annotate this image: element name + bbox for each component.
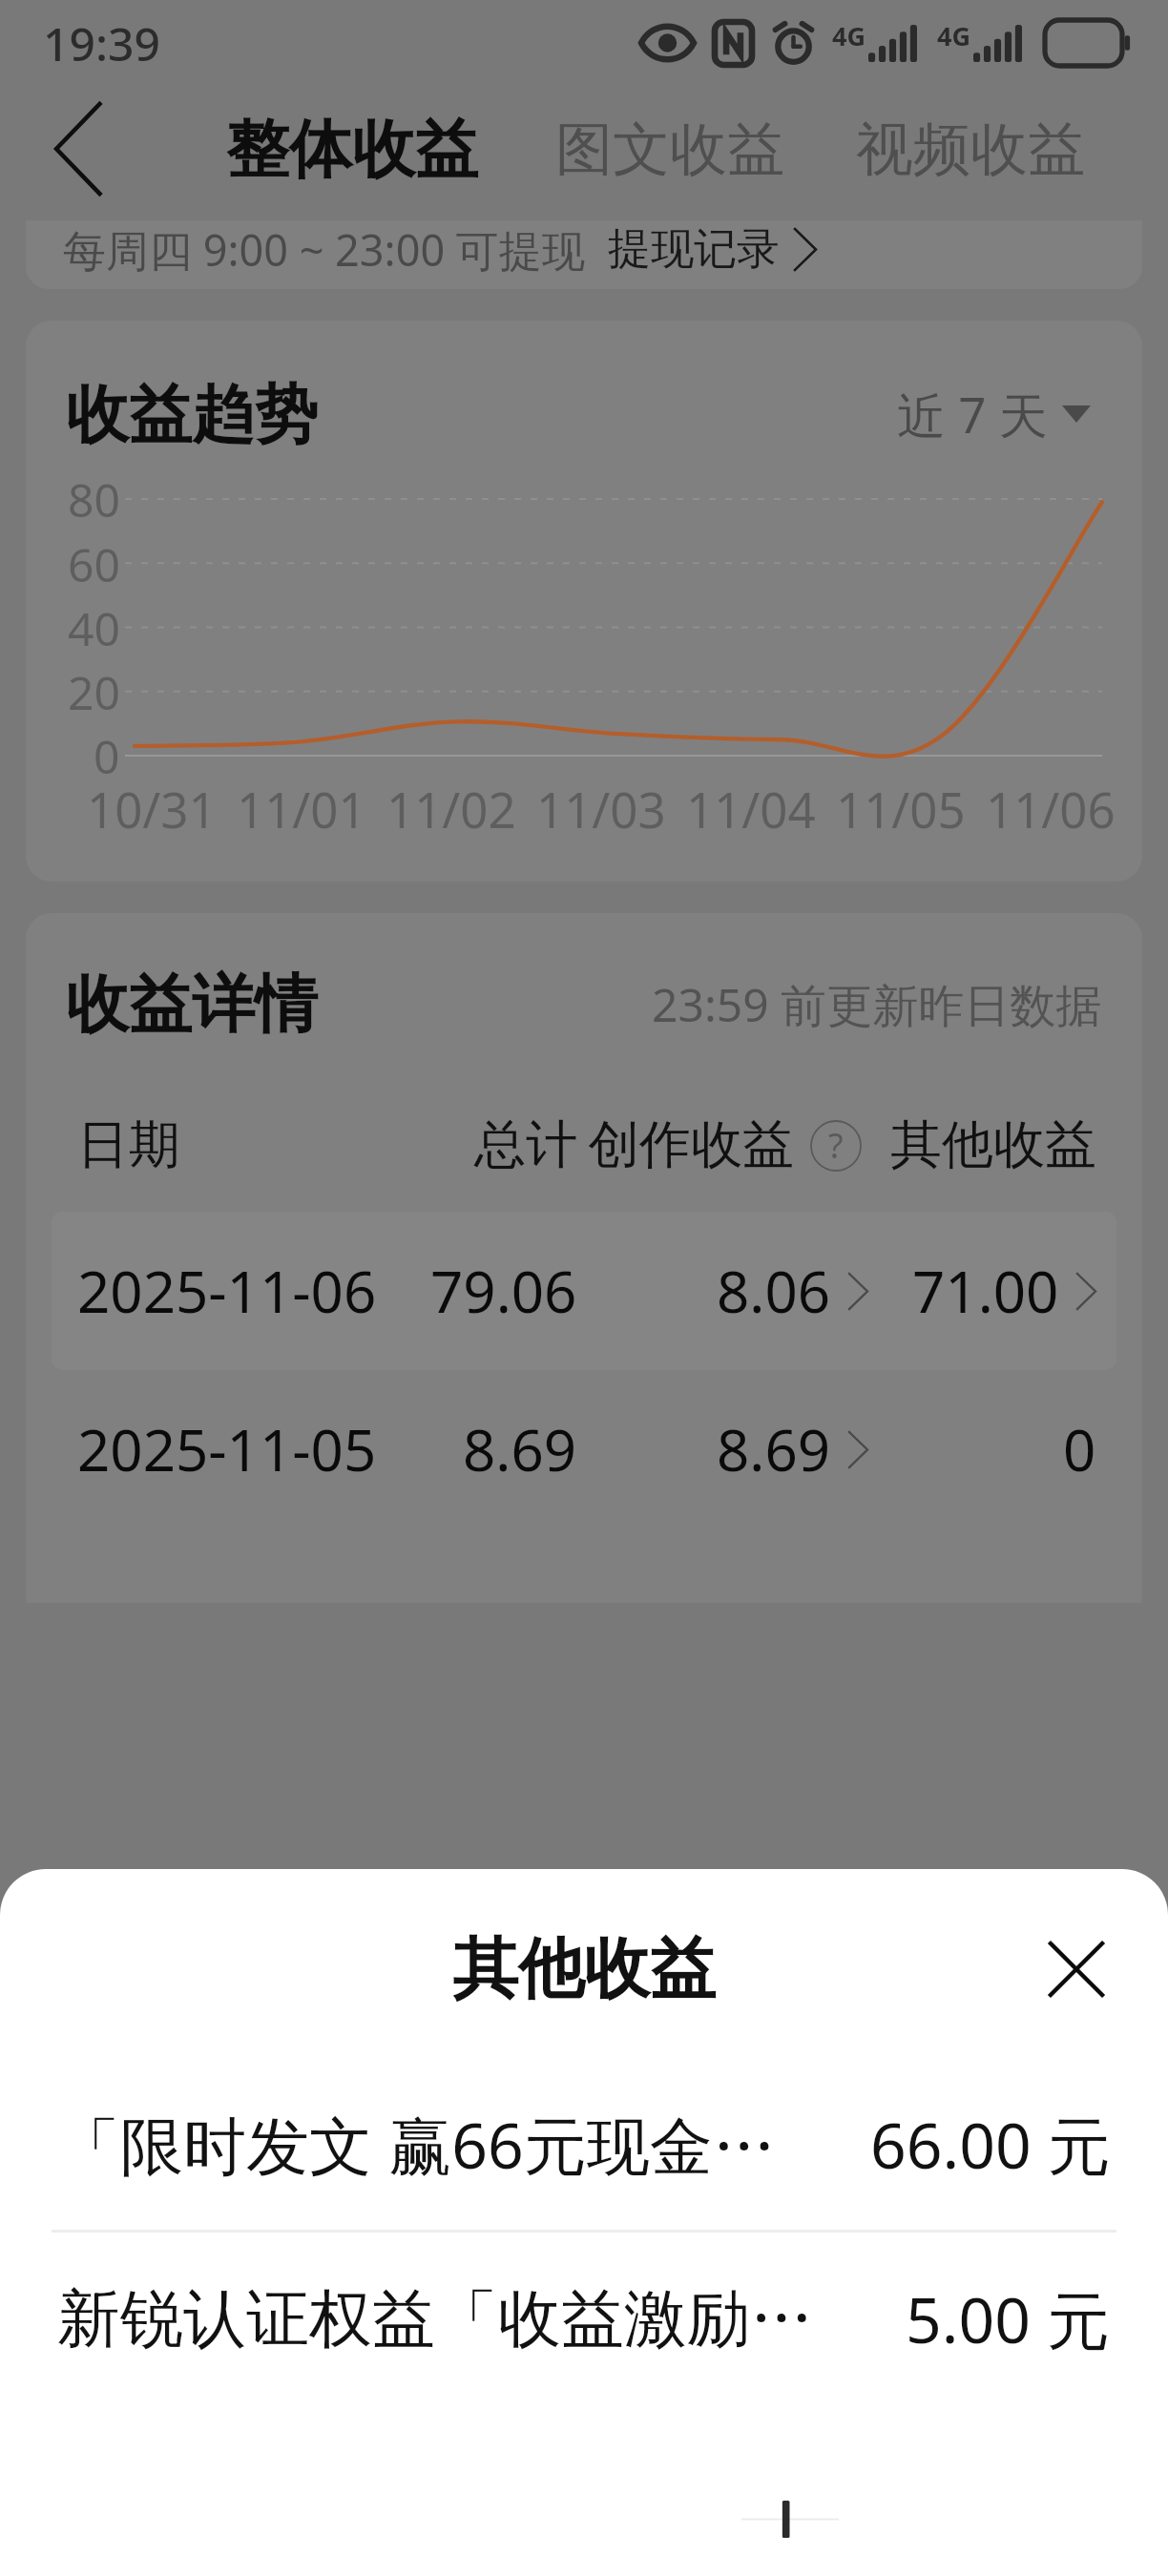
staticText: 收益趋势 (66, 375, 318, 454)
staticText: 收益详情 (66, 965, 318, 1044)
staticText: 日期 (77, 1112, 180, 1177)
staticText: 0 (94, 725, 120, 787)
staticText: 视频收益 (856, 114, 1085, 186)
staticText: 0 (1063, 1410, 1096, 1488)
staticText: 每周四 9:00 ~ 23:00 可提现 (63, 220, 585, 279)
button[interactable]: About creation revenue (808, 1118, 863, 1173)
staticText: 8.06 (717, 1252, 831, 1330)
button[interactable]: Back (11, 86, 143, 212)
staticText: 近 7 天 (897, 381, 1048, 447)
button[interactable]: 视频收益 (836, 99, 1105, 200)
staticText: 2025-11-05 (77, 1410, 377, 1488)
button[interactable]: 提现记录 (608, 222, 817, 277)
staticText: 其他收益 (890, 1112, 1096, 1177)
staticText: 11/05 (836, 776, 966, 841)
staticText: 66.00 元 (870, 2101, 1111, 2187)
button[interactable]: 「限时发文 赢66元现金」活动奖… (0, 2058, 1168, 2230)
staticText: 4G (937, 18, 970, 53)
staticText: 提现记录 (608, 222, 780, 277)
staticText: 图文收益 (555, 114, 784, 186)
staticText: 19:39 (43, 12, 160, 74)
staticText: 40 (68, 597, 120, 659)
staticText: 11/06 (986, 776, 1116, 841)
staticText: 4G (832, 18, 866, 53)
staticText: 「限时发文 赢66元现金」活动奖… (57, 2101, 836, 2187)
staticText: 8.69 (717, 1410, 831, 1488)
button[interactable]: 整体收益 (206, 95, 498, 203)
staticText: 总计 (474, 1112, 577, 1177)
button[interactable]: 图文收益 (535, 99, 804, 200)
staticText: 23:59 前更新昨日数据 (652, 973, 1102, 1036)
button[interactable]: 近 7 天 (886, 369, 1102, 459)
button[interactable]: Close (1022, 1915, 1131, 2024)
staticText: 新锐认证权益「收益激励」奖金… (57, 2279, 871, 2358)
staticText: 71.00 (912, 1252, 1059, 1330)
staticText: 10/31 (87, 776, 217, 841)
staticText: 79.06 (430, 1252, 577, 1330)
staticText: 5.00 元 (906, 2275, 1111, 2361)
staticText: 11/04 (686, 776, 816, 841)
staticText: 11/03 (536, 776, 666, 841)
staticText: 60 (68, 533, 120, 595)
staticText: 其他收益 (452, 1928, 716, 2011)
button[interactable]: 新锐认证权益「收益激励」奖金… (0, 2233, 1168, 2404)
button[interactable]: 2025-11-06 (52, 1212, 1116, 1370)
button[interactable]: 2025-11-05 (52, 1370, 1116, 1528)
staticText: 8.69 (463, 1410, 577, 1488)
staticText: 11/02 (386, 776, 516, 841)
staticText: 80 (68, 468, 120, 530)
staticText: 2025-11-06 (77, 1252, 377, 1330)
staticText: 20 (68, 661, 120, 723)
staticText: 11/01 (237, 776, 366, 841)
staticText: ? (828, 1122, 844, 1169)
staticText: 创作收益 (588, 1112, 794, 1177)
staticText: 整体收益 (226, 110, 478, 189)
